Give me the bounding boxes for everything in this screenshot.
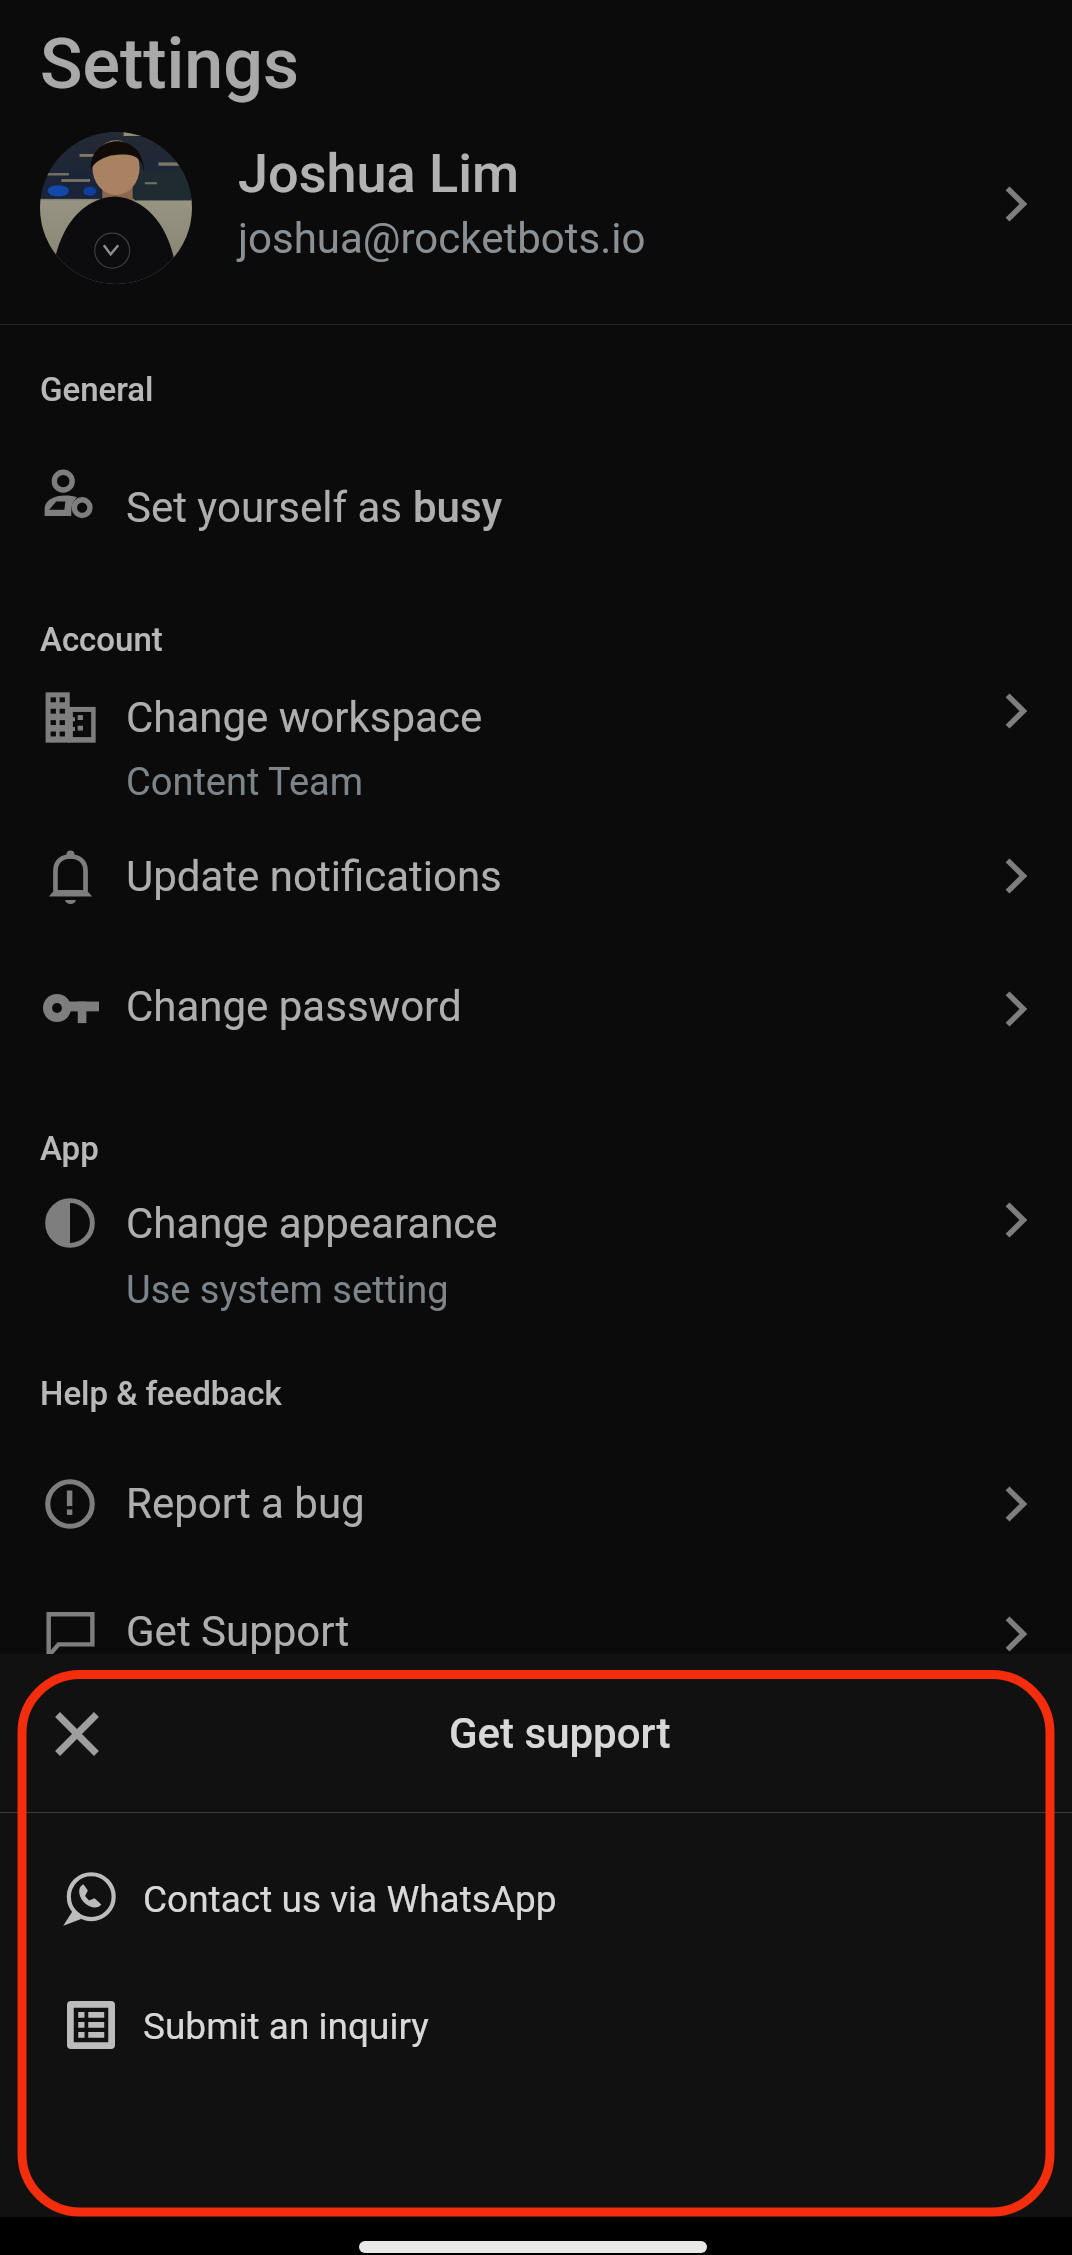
staticText: Get Support [126,1607,350,1656]
staticText: busy [413,483,503,532]
button[interactable]: Change password [0,953,1072,1059]
staticText: Settings [40,23,300,105]
button[interactable]: Close [43,1700,111,1768]
staticText: Content Team [126,760,364,805]
staticText: App [40,1129,99,1168]
staticText: Help & feedback [40,1374,282,1413]
button[interactable]: Joshua Lim [0,122,1072,297]
staticText: Change password [126,982,462,1031]
staticText: Submit an inquiry [143,2005,429,2048]
button[interactable]: Contact us via WhatsApp [0,1852,1072,1948]
staticText: Change workspace [126,693,483,742]
staticText: Joshua Lim [238,142,519,205]
button[interactable]: Update notifications [0,822,1072,928]
staticText: Report a bug [126,1479,365,1528]
button[interactable]: Submit an inquiry [0,1978,1072,2074]
staticText: Change appearance [126,1199,498,1248]
button[interactable]: Change workspace [0,676,1072,806]
button[interactable]: Change appearance [0,1180,1072,1310]
staticText: Update notifications [126,852,502,901]
staticText: General [40,370,154,409]
staticText: Get support [449,1709,671,1758]
staticText: Set yourself as [126,483,413,532]
button[interactable]: Set yourself as [0,452,1072,558]
button[interactable]: Get Support [0,1580,1072,1686]
staticText: Account [40,620,163,659]
staticText: Contact us via WhatsApp [143,1878,557,1921]
staticText: joshua@rocketbots.io [238,214,646,263]
staticText: Use system setting [126,1268,449,1313]
button[interactable]: Report a bug [0,1450,1072,1556]
